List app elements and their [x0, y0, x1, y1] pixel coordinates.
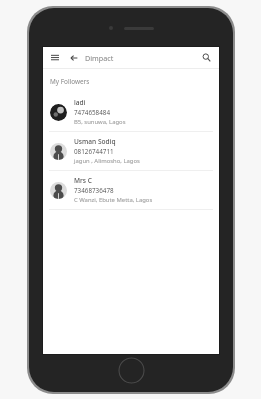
- staticText: jagun , Alimosho, Lagos: [74, 157, 140, 165]
- staticText: My Followers: [50, 77, 90, 86]
- button[interactable]: Mrs C: [43, 171, 219, 209]
- staticText: ladi: [74, 98, 86, 107]
- button[interactable]: Menu: [48, 51, 62, 65]
- staticText: 73468736478: [74, 186, 114, 195]
- staticText: C Wanzi, Ebute Metta, Lagos: [74, 196, 153, 204]
- button[interactable]: Back: [67, 51, 81, 65]
- other: Home: [118, 357, 145, 384]
- staticText: Usman Sodiq: [74, 137, 116, 146]
- staticText: 08126744711: [74, 147, 114, 156]
- button[interactable]: ladi: [43, 93, 219, 131]
- staticText: B5, sunuwa, Lagos: [74, 118, 126, 126]
- button[interactable]: Usman Sodiq: [43, 132, 219, 170]
- staticText: Dimpact: [85, 53, 114, 63]
- staticText: Mrs C: [74, 176, 92, 185]
- button[interactable]: Search: [199, 50, 214, 65]
- staticText: 7474658484: [74, 108, 111, 117]
